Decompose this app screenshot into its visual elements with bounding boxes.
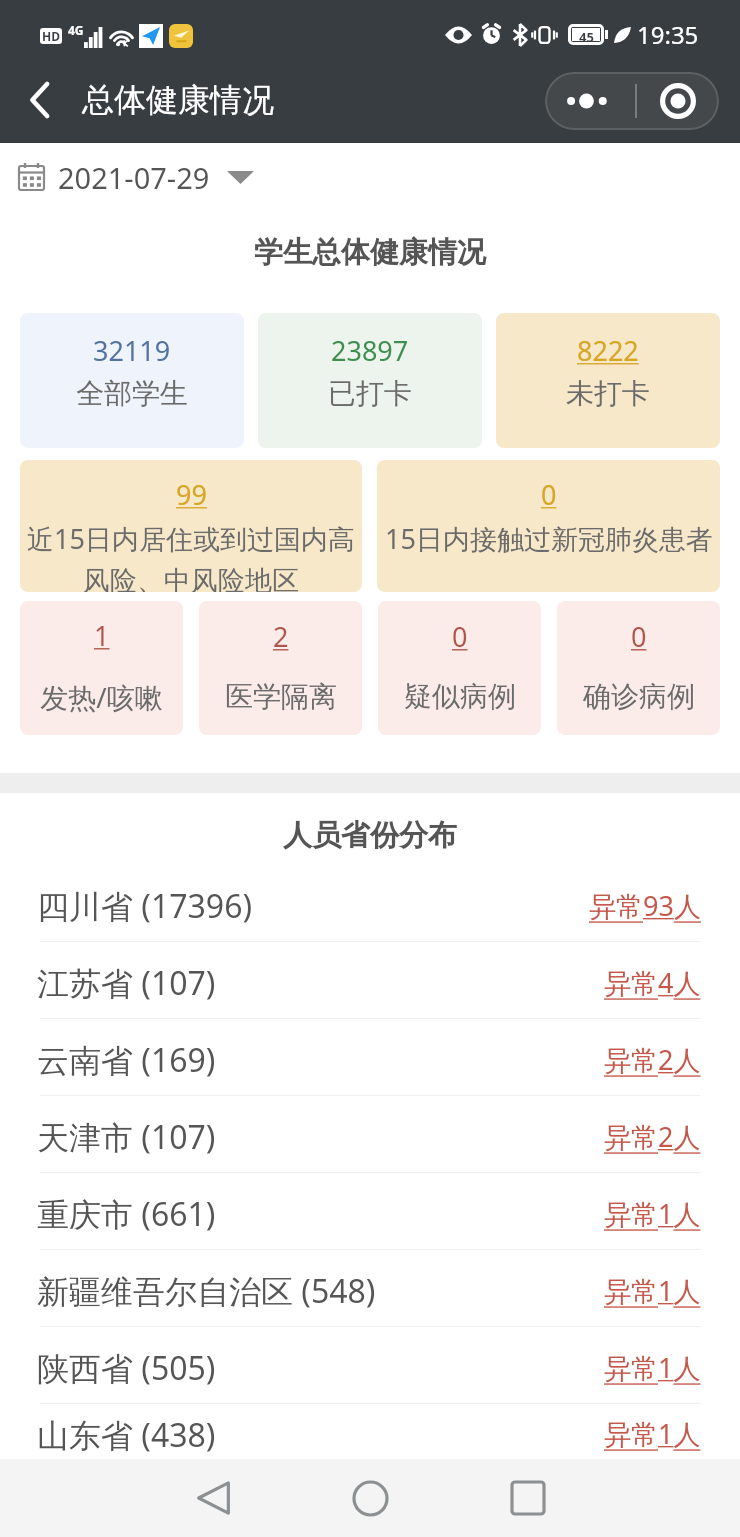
- staticText: 异常1人: [604, 1195, 701, 1232]
- staticText: 新疆维吾尔自治区 (548): [37, 1269, 376, 1313]
- staticText: 0: [631, 618, 647, 655]
- button[interactable]: 0: [378, 601, 541, 735]
- button[interactable]: 2021-07-29: [0, 143, 740, 211]
- staticText: 云南省 (169): [37, 1038, 216, 1082]
- button[interactable]: 23897: [258, 313, 482, 448]
- staticText: 学生总体健康情况: [254, 234, 486, 271]
- staticText: 未打卡: [566, 376, 650, 411]
- staticText: 重庆市 (661): [37, 1192, 216, 1236]
- staticText: 32119: [93, 332, 171, 369]
- staticText: 全部学生: [76, 376, 188, 411]
- button[interactable]: 云南省 (169): [0, 1019, 740, 1095]
- button[interactable]: Home: [292, 1459, 449, 1537]
- staticText: 1: [94, 617, 110, 654]
- button[interactable]: 2: [199, 601, 362, 735]
- staticText: 近15日内居住或到过国内高风险、中风险地区: [23, 520, 359, 592]
- staticText: 发热/咳嗽: [40, 678, 163, 716]
- button[interactable]: 江苏省 (107): [0, 942, 740, 1018]
- staticText: 0: [541, 476, 557, 513]
- button[interactable]: 99: [20, 460, 362, 592]
- button[interactable]: 32119: [20, 313, 244, 448]
- staticText: 0: [452, 618, 468, 655]
- staticText: 19:35: [637, 18, 699, 51]
- staticText: 45: [579, 28, 594, 41]
- staticText: 异常1人: [604, 1272, 701, 1309]
- staticText: 确诊病例: [583, 679, 695, 714]
- button[interactable]: Close: [637, 72, 719, 130]
- staticText: 医学隔离: [225, 679, 337, 714]
- staticText: 天津市 (107): [37, 1115, 216, 1159]
- staticText: 99: [176, 476, 207, 513]
- staticText: 异常1人: [604, 1349, 701, 1386]
- button[interactable]: 山东省 (438): [0, 1404, 740, 1459]
- staticText: 已打卡: [328, 376, 412, 411]
- staticText: HD: [42, 28, 60, 44]
- staticText: 总体健康情况: [82, 80, 274, 120]
- staticText: 陕西省 (505): [37, 1346, 216, 1390]
- button[interactable]: 天津市 (107): [0, 1096, 740, 1172]
- button[interactable]: 重庆市 (661): [0, 1173, 740, 1249]
- button[interactable]: 四川省 (17396): [0, 865, 740, 941]
- staticText: 人员省份分布: [283, 817, 457, 854]
- staticText: 异常2人: [604, 1118, 701, 1155]
- button[interactable]: 8222: [496, 313, 720, 448]
- button[interactable]: Back: [135, 1459, 292, 1537]
- staticText: 8222: [577, 332, 639, 369]
- staticText: 15日内接触过新冠肺炎患者: [385, 520, 713, 557]
- staticText: 疑似病例: [404, 679, 516, 714]
- button[interactable]: More: [545, 72, 635, 130]
- staticText: 2021-07-29: [58, 158, 210, 197]
- staticText: 23897: [331, 332, 409, 369]
- button[interactable]: 新疆维吾尔自治区 (548): [0, 1250, 740, 1326]
- button[interactable]: 0: [557, 601, 720, 735]
- button[interactable]: Recent apps: [449, 1459, 606, 1537]
- button[interactable]: 0: [377, 460, 720, 592]
- staticText: 异常1人: [604, 1415, 701, 1452]
- staticText: 4G: [68, 22, 84, 38]
- staticText: 山东省 (438): [37, 1413, 216, 1457]
- staticText: 四川省 (17396): [37, 884, 253, 928]
- staticText: 2: [273, 618, 289, 655]
- button[interactable]: Back: [0, 71, 78, 143]
- staticText: 异常93人: [589, 887, 701, 924]
- staticText: 异常4人: [604, 964, 701, 1001]
- staticText: 江苏省 (107): [37, 961, 216, 1005]
- staticText: 异常2人: [604, 1041, 701, 1078]
- button[interactable]: 陕西省 (505): [0, 1327, 740, 1403]
- button[interactable]: 1: [20, 601, 183, 735]
